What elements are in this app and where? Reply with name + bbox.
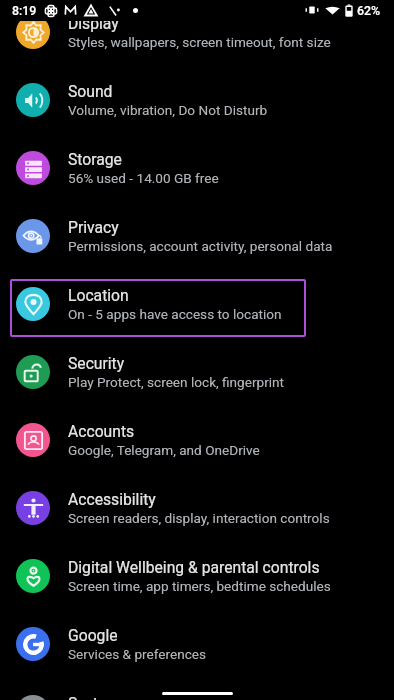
staticText: Accounts	[68, 422, 394, 440]
staticText: Security	[68, 354, 394, 372]
staticText: Google, Telegram, and OneDrive	[68, 442, 394, 458]
button[interactable]: Display	[0, 0, 394, 66]
staticText: Storage	[68, 150, 394, 168]
staticText: Screen time, app timers, bedtime schedul…	[68, 578, 394, 594]
button[interactable]: System	[0, 678, 394, 700]
button[interactable]: Security	[0, 338, 394, 406]
button[interactable]: Sound	[0, 66, 394, 134]
button[interactable]: Privacy	[0, 202, 394, 270]
staticText: Volume, vibration, Do Not Disturb	[68, 102, 394, 118]
staticText: 8:19	[12, 3, 37, 18]
staticText: Permissions, account activity, personal …	[68, 238, 394, 254]
button[interactable]: Accessibility	[0, 474, 394, 542]
button[interactable]: Location	[0, 270, 394, 338]
staticText: Services & preferences	[68, 646, 394, 662]
staticText: Play Protect, screen lock, fingerprint	[68, 374, 394, 390]
staticText: Screen readers, display, interaction con…	[68, 510, 394, 526]
staticText: On - 5 apps have access to location	[68, 306, 394, 322]
staticText: 62%	[357, 3, 381, 18]
staticText: Location	[68, 286, 394, 304]
button[interactable]: Google	[0, 610, 394, 678]
button[interactable]: Storage	[0, 134, 394, 202]
staticText: Privacy	[68, 218, 394, 236]
button[interactable]: Accounts	[0, 406, 394, 474]
staticText: Digital Wellbeing & parental controls	[68, 558, 394, 576]
staticText: Accessibility	[68, 490, 394, 508]
staticText: Sound	[68, 82, 394, 100]
staticText: 56% used - 14.00 GB free	[68, 170, 394, 186]
staticText: System	[68, 694, 394, 700]
staticText: Styles, wallpapers, screen timeout, font…	[68, 34, 394, 50]
staticText: Google	[68, 626, 394, 644]
staticText: Display	[68, 14, 394, 32]
button[interactable]: Digital Wellbeing & parental controls	[0, 542, 394, 610]
